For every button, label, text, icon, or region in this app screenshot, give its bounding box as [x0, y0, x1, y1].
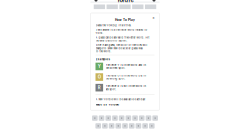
staticText: A new Yordle will be available each day! [95, 98, 145, 101]
staticText: R [98, 85, 101, 90]
staticText: the correct spot. [105, 66, 125, 70]
button[interactable]: Key [105, 115, 111, 121]
staticText: Examples [95, 58, 109, 61]
button[interactable]: Key [109, 123, 114, 129]
button[interactable]: Key [129, 123, 134, 129]
staticText: The letter O is in the word but in [105, 74, 145, 77]
staticText: After each guess, the color of the tiles… [95, 44, 147, 53]
button[interactable]: Key [139, 115, 144, 121]
button[interactable]: Key [99, 115, 104, 121]
staticText: the wrong spot. [105, 77, 125, 80]
button[interactable]: Key [122, 123, 128, 129]
staticText: A guess can be any valid five-letter wor… [95, 36, 149, 42]
staticText: Made by Yordeve [95, 103, 119, 106]
button[interactable]: Key [136, 123, 141, 129]
button[interactable]: Key [115, 123, 121, 129]
staticText: How To Play [115, 18, 135, 22]
button[interactable]: Key [146, 115, 151, 121]
staticText: Every answer is a five letter word relat… [95, 28, 147, 34]
staticText: ✕ [152, 16, 154, 20]
button[interactable]: Key [112, 115, 118, 121]
staticText: The letter Y is in the word and in [105, 63, 145, 67]
button[interactable]: Key [95, 123, 101, 129]
button[interactable]: Statistics [152, 0, 155, 2]
staticText: any spot. [105, 88, 116, 91]
button[interactable]: Key [142, 123, 148, 129]
button[interactable]: Help [94, 0, 97, 2]
button[interactable]: Key [125, 115, 131, 121]
staticText: The letter R is not in the word in [105, 85, 145, 88]
button[interactable]: Key [149, 123, 155, 129]
staticText: Guess the YORDLE in six tries. [95, 24, 131, 27]
button[interactable]: Key [102, 123, 108, 129]
staticText: Y [98, 64, 101, 69]
button[interactable]: Close [152, 17, 154, 19]
button[interactable]: Key [119, 115, 124, 121]
staticText: Yordle [116, 0, 133, 4]
staticText: O [98, 74, 101, 80]
button[interactable]: Key [132, 115, 138, 121]
button[interactable]: Key [92, 115, 98, 121]
button[interactable]: Key [152, 115, 158, 121]
